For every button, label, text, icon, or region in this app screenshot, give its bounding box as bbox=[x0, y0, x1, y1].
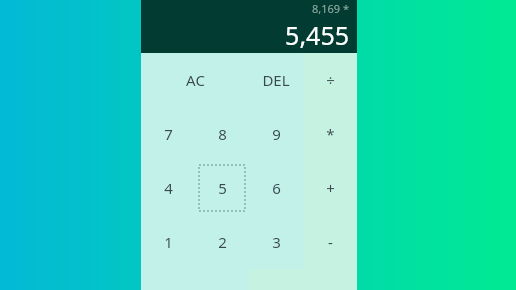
button[interactable]: 2 bbox=[195, 215, 249, 269]
button[interactable]: 9 bbox=[249, 107, 303, 161]
staticText: 8 bbox=[218, 124, 227, 144]
button[interactable]: + bbox=[303, 161, 357, 215]
other: Divide bbox=[303, 53, 357, 107]
button[interactable]: 6 bbox=[249, 161, 303, 215]
staticText: 2 bbox=[218, 232, 227, 252]
button[interactable]: 8,169 * bbox=[141, 0, 357, 53]
staticText: 8,169 * bbox=[311, 1, 349, 16]
staticText: 7 bbox=[164, 124, 173, 144]
button[interactable]: 3 bbox=[249, 215, 303, 269]
staticText: 4 bbox=[164, 178, 173, 198]
button[interactable]: 7 bbox=[141, 107, 195, 161]
button[interactable]: * bbox=[303, 107, 357, 161]
staticText: 5 bbox=[218, 178, 227, 198]
staticText: + bbox=[326, 178, 335, 198]
staticText: 6 bbox=[272, 178, 281, 198]
button[interactable]: ÷ bbox=[303, 53, 357, 107]
staticText: 1 bbox=[164, 232, 173, 252]
staticText: DEL bbox=[262, 70, 290, 90]
staticText: * bbox=[326, 124, 335, 144]
button[interactable]: 1 bbox=[141, 215, 195, 269]
staticText: - bbox=[328, 232, 333, 252]
staticText: AC bbox=[186, 70, 205, 90]
button[interactable]: AC bbox=[141, 53, 249, 107]
button[interactable]: 5 bbox=[195, 161, 249, 215]
staticText: 3 bbox=[272, 232, 281, 252]
staticText: ÷ bbox=[326, 70, 335, 90]
button[interactable]: 4 bbox=[141, 161, 195, 215]
button[interactable]: 8 bbox=[195, 107, 249, 161]
staticText: 9 bbox=[272, 124, 281, 144]
button[interactable]: DEL bbox=[249, 53, 303, 107]
button[interactable]: - bbox=[303, 215, 357, 269]
staticText: 5,455 bbox=[285, 18, 349, 52]
